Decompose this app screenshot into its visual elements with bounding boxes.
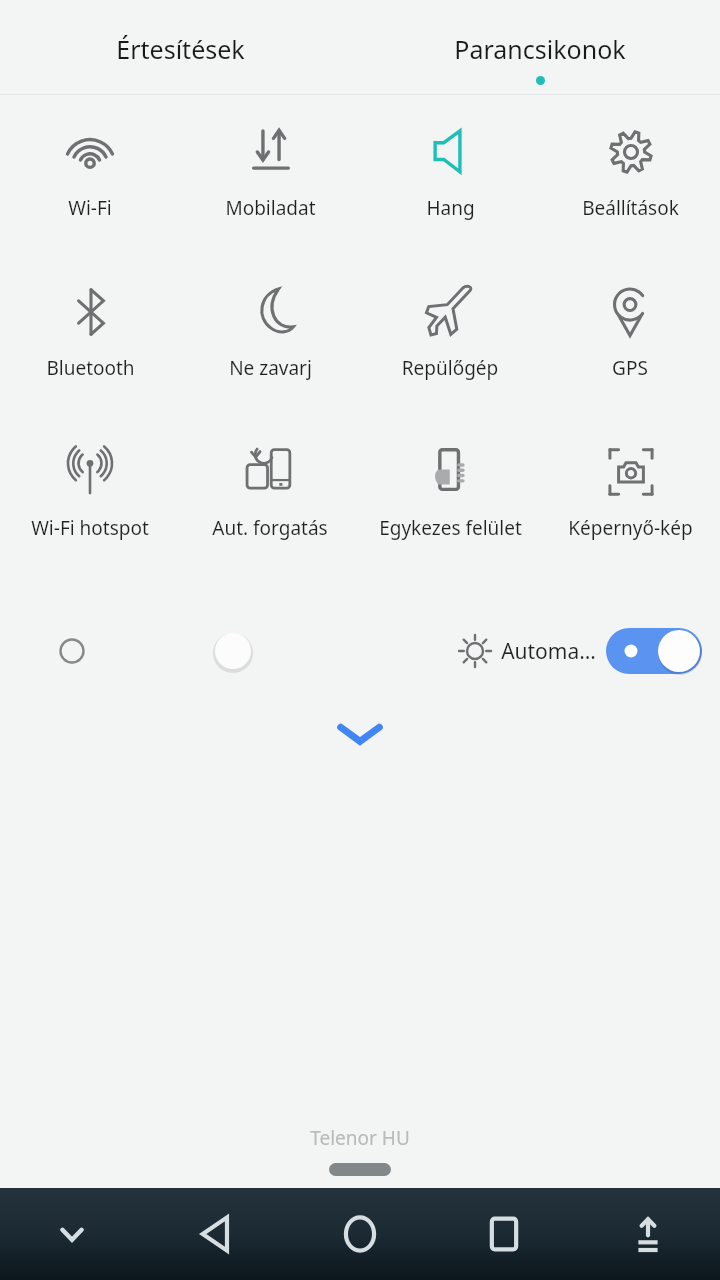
staticText: Bluetooth [46,355,135,381]
staticText: Hang [426,195,475,221]
button[interactable]: Wi-Fi hotspot [0,435,180,595]
button[interactable]: Share screen [576,1188,720,1280]
button[interactable]: Mobiladat [180,115,360,275]
staticText: GPS [612,355,648,381]
button[interactable]: Parancsikonok [360,0,720,94]
staticText: Repülőgép üzemmód [360,355,540,381]
staticText: Aut. forgatás [212,515,328,541]
button[interactable]: Home [288,1188,432,1280]
button[interactable]: Értesítések [0,0,360,94]
button[interactable]: Aut. forgatás [180,435,360,595]
button[interactable]: Brightness slider [0,621,418,681]
staticText: Beállítások [582,195,679,221]
button[interactable]: Képernyő-kép [540,435,720,595]
button[interactable]: Repülőgép üzemmód [360,275,540,435]
button[interactable]: Recents [432,1188,576,1280]
button[interactable]: Bluetooth [0,275,180,435]
staticText: Automa… [501,637,596,666]
button[interactable]: Close panel handle [329,1163,391,1176]
staticText: Ne zavarj [229,355,312,381]
button[interactable]: Automa… [455,628,702,674]
button[interactable]: Beállítások [540,115,720,275]
staticText: Wi-Fi [68,195,112,221]
staticText: Telenor HU [310,1125,410,1151]
staticText: Képernyő-kép [568,515,693,541]
button[interactable]: Wi-Fi [0,115,180,275]
button[interactable]: Egykezes felület [360,435,540,595]
button[interactable]: GPS [540,275,720,435]
button[interactable]: Hang [360,115,540,275]
button[interactable]: Back [144,1188,288,1280]
button[interactable]: Ne zavarj [180,275,360,435]
staticText: Wi-Fi hotspot [31,515,149,541]
staticText: Parancsikonok [454,32,626,66]
button[interactable]: Hide [0,1188,144,1280]
button[interactable]: Expand [320,709,400,757]
staticText: Egykezes felület [379,515,522,541]
staticText: Értesítések [116,32,245,66]
staticText: Mobiladat [225,195,316,221]
